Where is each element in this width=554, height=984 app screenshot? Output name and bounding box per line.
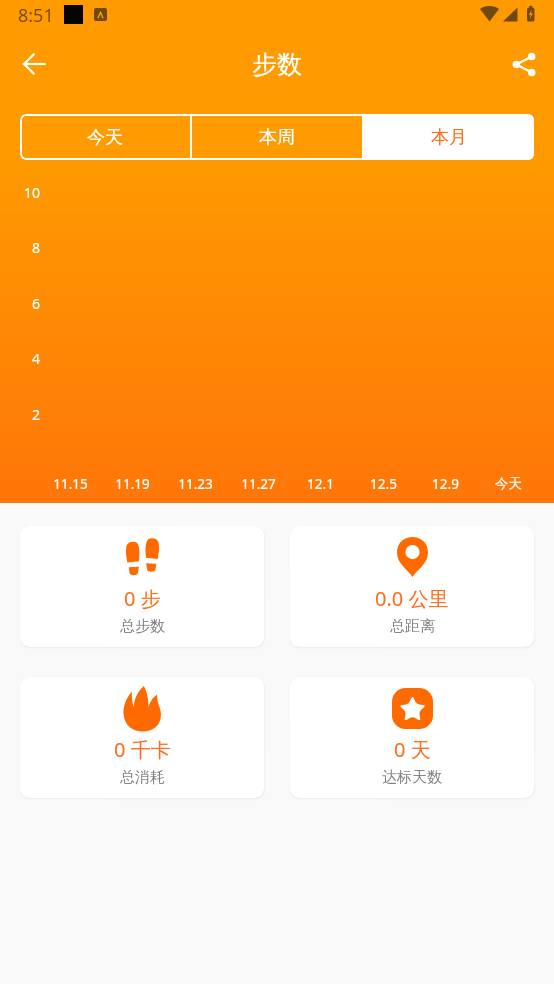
staticText: 0 千卡 — [114, 736, 171, 762]
staticText: 8:51 — [18, 3, 54, 28]
staticText: 12.1 — [307, 475, 334, 493]
staticText: 本月 — [431, 126, 467, 149]
button[interactable]: 0 步 — [20, 526, 264, 647]
staticText: 4 — [31, 349, 40, 367]
button[interactable]: 0 千卡 — [20, 677, 264, 798]
staticText: 6 — [31, 294, 40, 312]
staticText: 12.9 — [432, 475, 459, 493]
staticText: 0 步 — [124, 585, 161, 611]
staticText: 今天 — [495, 475, 522, 492]
staticText: 10 — [23, 183, 40, 201]
staticText: 0 天 — [394, 736, 431, 762]
button[interactable]: 本周 — [192, 114, 362, 160]
staticText: 步数 — [252, 49, 302, 80]
staticText: 0.0 公里 — [375, 585, 449, 611]
staticText: 本周 — [259, 126, 295, 149]
button[interactable]: Back — [11, 41, 57, 87]
button[interactable]: 0.0 公里 — [290, 526, 534, 647]
staticText: 11.23 — [178, 475, 213, 493]
staticText: 总步数 — [120, 617, 165, 636]
staticText: 8 — [31, 238, 40, 256]
staticText: 达标天数 — [382, 768, 442, 787]
button[interactable]: Share — [501, 41, 547, 87]
button[interactable]: 今天 — [20, 114, 190, 160]
button[interactable]: 0 天 — [290, 677, 534, 798]
staticText: 今天 — [87, 126, 123, 149]
staticText: 2 — [31, 405, 40, 423]
staticText: 11.27 — [241, 475, 276, 493]
staticText: 11.19 — [115, 475, 150, 493]
staticText: 总距离 — [390, 617, 435, 636]
button[interactable]: 本月 — [364, 114, 534, 160]
staticText: 总消耗 — [120, 768, 165, 787]
staticText: 11.15 — [53, 475, 88, 493]
staticText: 12.5 — [370, 475, 397, 493]
